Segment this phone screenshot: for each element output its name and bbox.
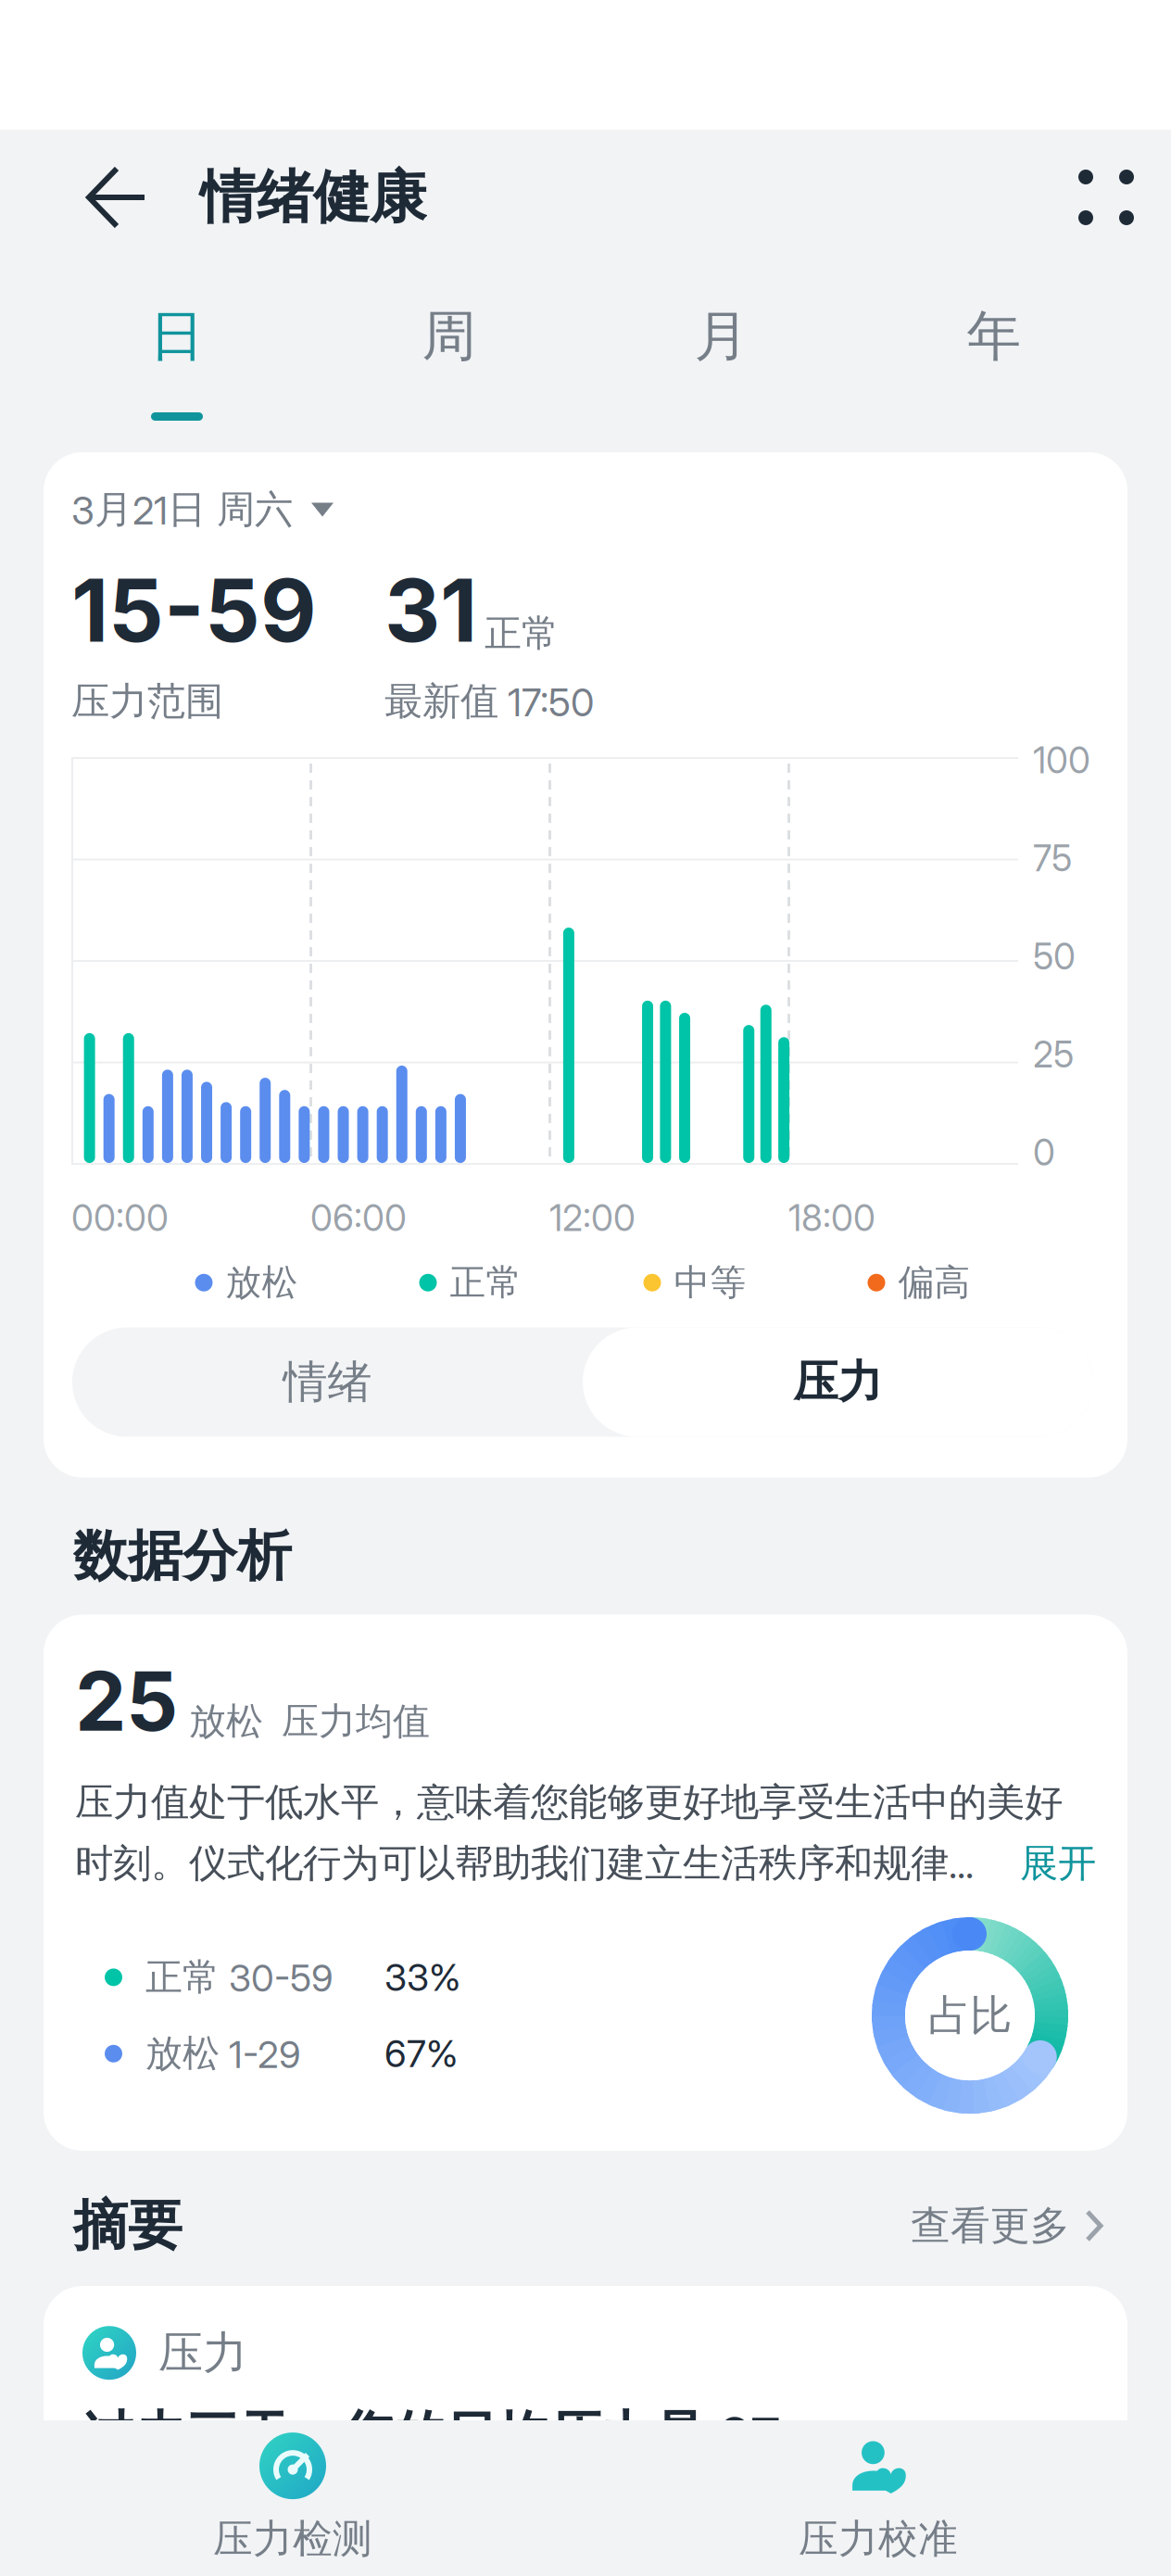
staticText: 3月21日 周六 [71,486,293,534]
staticText: 放松 1-29 [145,2030,301,2077]
staticText: 25 [75,1652,178,1750]
staticText: 压力值处于低水平，意味着您能够更好地享受生活中的美好 [75,1778,1063,1826]
staticText: 正常 [450,1260,522,1305]
button[interactable]: 压力 [583,1327,1093,1437]
staticText: 0 [1033,1131,1055,1174]
staticText: 中等 [674,1260,746,1305]
staticText: 压力范围 [71,677,223,726]
staticText: 年 [967,302,1021,371]
staticText: 摘要 [73,2192,183,2260]
button[interactable]: Back [0,146,172,248]
staticText: 放松 [189,1698,263,1745]
staticText: 日 [150,302,204,371]
staticText: 31 [384,558,477,663]
staticText: 15-59 [71,558,317,663]
staticText: 过去三天，您的日均压力是 67 [82,2403,781,2469]
staticText: 偏高 [898,1260,970,1305]
staticText: 压力校准 [799,2514,958,2564]
staticText: 正常 [485,610,559,657]
staticText: 压力均值 [282,1698,430,1745]
button[interactable]: 压力校准 [585,2420,1171,2576]
staticText: 33% [384,1955,460,2000]
staticText: 情绪健康 [200,162,426,233]
button[interactable]: 情绪 [72,1327,583,1437]
button[interactable]: 日 [41,300,313,421]
button[interactable]: More options [1041,145,1171,249]
staticText: 占比 [928,1989,1012,2042]
staticText: 压力 [158,2325,247,2381]
staticText: 时刻。仪式化行为可以帮助我们建立生活秩序和规律... [75,1839,974,1888]
staticText: 100 [1033,739,1090,782]
staticText: 查看更多 [911,2201,1070,2251]
staticText: 18:00 [788,1196,875,1240]
staticText: 25 [1033,1033,1074,1076]
button[interactable]: 查看更多 [911,2201,1127,2251]
staticText: 情绪 [283,1354,372,1410]
staticText: 正常 30-59 [145,1954,334,2001]
staticText: 周 [422,302,477,371]
staticText: 数据分析 [73,1522,292,1591]
staticText: 50 [1033,935,1076,978]
staticText: 展开 [1020,1839,1096,1888]
staticText: 67% [384,2031,458,2076]
staticText: 月 [694,302,749,371]
button[interactable]: 月 [585,300,858,421]
button[interactable]: 压力检测 [0,2420,585,2576]
staticText: 放松 [226,1260,298,1305]
button[interactable]: 年 [858,300,1130,421]
button[interactable]: 周 [313,300,585,421]
staticText: 压力 [793,1354,882,1410]
button[interactable]: 展开 [1020,1839,1096,1888]
staticText: 最新值 17:50 [384,677,594,726]
staticText: 压力检测 [213,2514,372,2564]
staticText: 12:00 [549,1196,636,1240]
staticText: 06:00 [310,1196,407,1240]
staticText: 00:00 [71,1196,169,1240]
staticText: 75 [1033,837,1072,880]
